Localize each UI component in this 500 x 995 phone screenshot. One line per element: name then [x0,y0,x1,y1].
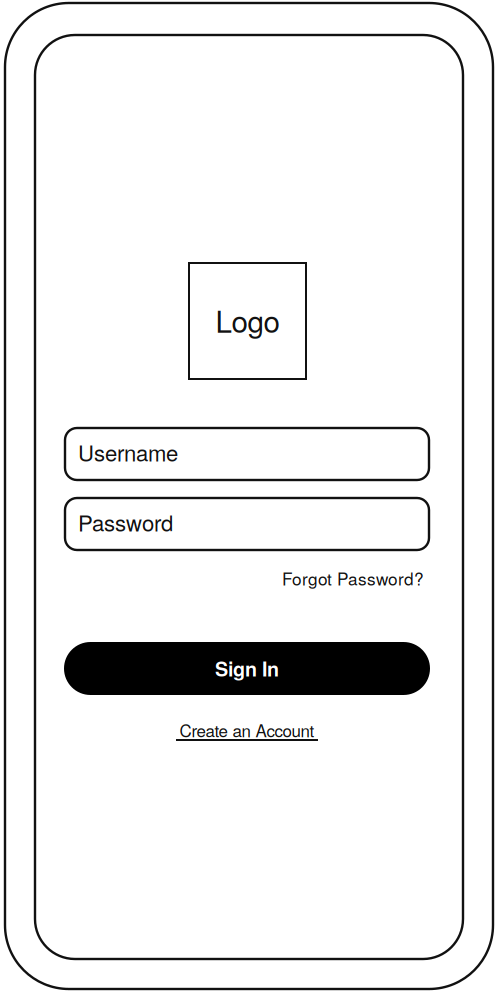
staticText: Logo [215,299,279,341]
button[interactable]: Sign In [64,642,430,695]
staticText: Username [78,436,178,468]
staticText: Create an Account [179,718,314,742]
staticText: Password [78,506,173,538]
button[interactable]: Create an Account [167,722,327,741]
button[interactable]: Password [65,498,429,550]
button[interactable]: Username [65,428,429,480]
staticText: Forgot Password? [282,566,424,590]
staticText: Sign In [215,654,279,683]
button[interactable]: Forgot Password? [280,568,424,588]
